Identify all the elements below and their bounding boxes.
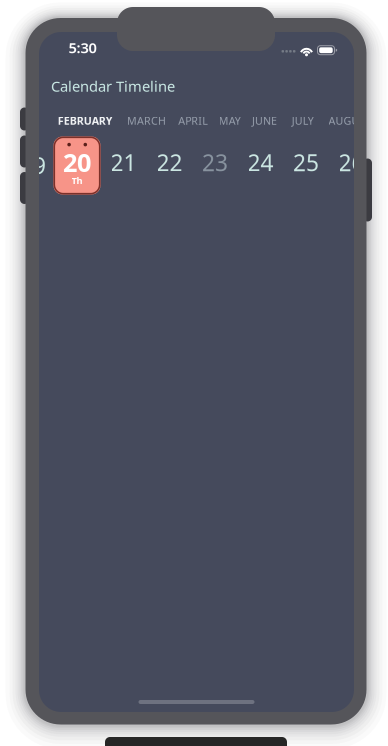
button[interactable]: 21 xyxy=(106,134,140,191)
staticText: 19 xyxy=(20,150,46,180)
staticText: Th xyxy=(71,174,82,187)
button[interactable]: 26 xyxy=(334,134,368,191)
staticText: FEBRUARY xyxy=(58,113,113,128)
button[interactable]: MAY xyxy=(219,113,299,127)
button[interactable]: 25 xyxy=(289,134,323,191)
button[interactable]: AUGUST xyxy=(329,113,388,127)
button[interactable]: MARCH xyxy=(127,113,207,127)
staticText: MARCH xyxy=(127,113,166,128)
button[interactable]: 19 xyxy=(16,137,50,194)
button[interactable]: 20 xyxy=(53,136,100,194)
staticText: 5:30 xyxy=(68,38,96,57)
button[interactable]: APRIL xyxy=(178,113,258,127)
staticText: 26 xyxy=(338,147,364,177)
button[interactable]: JUNE xyxy=(252,113,332,127)
staticText: 22 xyxy=(156,147,182,177)
staticText: 24 xyxy=(247,147,273,177)
button[interactable]: 27 xyxy=(380,134,388,191)
button[interactable]: 22 xyxy=(152,134,186,191)
staticText: MAY xyxy=(219,113,241,128)
staticText: JULY xyxy=(292,113,314,128)
button[interactable]: 23 xyxy=(198,134,232,191)
staticText: 21 xyxy=(110,147,136,177)
staticText: APRIL xyxy=(178,113,208,128)
staticText: 25 xyxy=(293,147,319,177)
staticText: 23 xyxy=(202,147,228,177)
staticText: Calendar Timeline xyxy=(51,76,175,96)
staticText: 20 xyxy=(63,145,91,179)
staticText: JUNE xyxy=(252,113,277,128)
staticText: AUGUST xyxy=(329,113,372,128)
button[interactable]: FEBRUARY xyxy=(58,113,138,127)
button[interactable]: JULY xyxy=(292,113,372,127)
button[interactable]: 24 xyxy=(243,134,277,191)
